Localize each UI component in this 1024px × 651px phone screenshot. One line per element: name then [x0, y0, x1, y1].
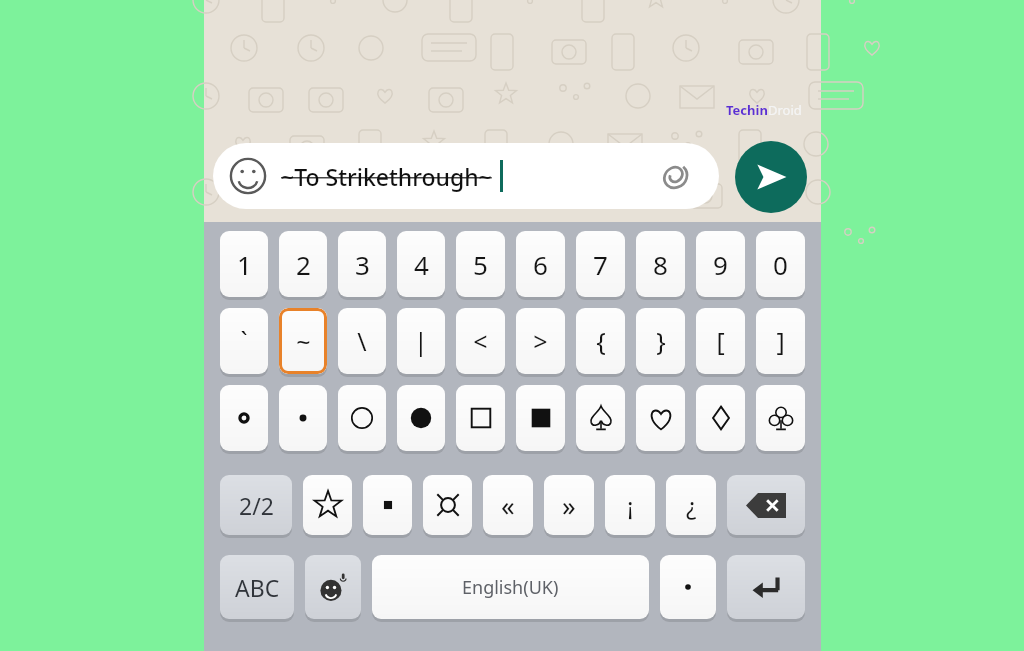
button[interactable]: `	[220, 308, 268, 374]
button[interactable]: Emoji and voice input	[305, 555, 361, 619]
button[interactable]	[303, 475, 352, 535]
staticText: ¿	[686, 489, 697, 522]
staticText: 4	[414, 247, 429, 282]
staticText: «	[501, 487, 515, 524]
button[interactable]	[279, 385, 327, 451]
staticText: ~To Strikethrough~	[281, 161, 492, 192]
staticText: 2	[296, 247, 311, 282]
staticText: >	[533, 324, 548, 358]
staticText: ¡	[627, 489, 634, 522]
button[interactable]: 3	[338, 231, 386, 297]
button[interactable]	[636, 385, 685, 451]
button[interactable]: «	[483, 475, 533, 535]
button[interactable]: 6	[516, 231, 565, 297]
button[interactable]: 2	[279, 231, 327, 297]
staticText: ABC	[235, 572, 280, 603]
other: Backspace	[727, 475, 805, 535]
button[interactable]	[516, 385, 565, 451]
button[interactable]: Emoji	[213, 143, 719, 209]
staticText: |	[414, 324, 428, 358]
button[interactable]: 8	[636, 231, 685, 297]
staticText: {	[596, 324, 606, 358]
staticText: `	[240, 324, 248, 358]
staticText: 9	[713, 247, 728, 282]
button[interactable]: ¡	[605, 475, 655, 535]
staticText: »	[562, 487, 576, 524]
staticText: English(UK)	[462, 575, 559, 600]
button[interactable]: \	[338, 308, 386, 374]
button[interactable]	[423, 475, 472, 535]
button[interactable]: 9	[696, 231, 745, 297]
button[interactable]	[456, 385, 505, 451]
staticText: ~	[296, 324, 311, 358]
button[interactable]: English(UK)	[372, 555, 649, 619]
button[interactable]	[397, 385, 445, 451]
button[interactable]: Emoji	[227, 155, 269, 197]
button[interactable]: >	[516, 308, 565, 374]
staticText: 0	[773, 247, 788, 282]
button[interactable]	[660, 555, 716, 619]
button[interactable]: Attach	[655, 155, 697, 197]
button[interactable]: }	[636, 308, 685, 374]
button[interactable]: Send	[735, 141, 807, 213]
button[interactable]: 4	[397, 231, 445, 297]
button[interactable]: ~	[279, 308, 327, 374]
staticText: \	[357, 324, 367, 358]
button[interactable]: 0	[756, 231, 805, 297]
button[interactable]: 2/2	[220, 475, 292, 535]
button[interactable]	[756, 385, 805, 451]
staticText: 6	[533, 247, 548, 282]
other: Enter	[727, 555, 805, 619]
staticText: <	[473, 324, 488, 358]
staticText: 8	[653, 247, 668, 282]
button[interactable]	[727, 555, 805, 619]
button[interactable]	[576, 385, 625, 451]
button[interactable]	[727, 475, 805, 535]
staticText: 2/2	[239, 490, 274, 521]
staticText: }	[656, 324, 666, 358]
button[interactable]: [	[696, 308, 745, 374]
button[interactable]: ABC	[220, 555, 294, 619]
button[interactable]	[220, 385, 268, 451]
button[interactable]: »	[544, 475, 594, 535]
staticText: 5	[473, 247, 488, 282]
staticText: 1	[237, 247, 252, 282]
button[interactable]: <	[456, 308, 505, 374]
staticText: Droid	[768, 101, 802, 119]
staticText: ]	[776, 324, 785, 358]
staticText: [	[716, 324, 725, 358]
button[interactable]	[338, 385, 386, 451]
button[interactable]	[696, 385, 745, 451]
staticText: 3	[355, 247, 370, 282]
button[interactable]: ¿	[666, 475, 716, 535]
staticText: Techin	[726, 101, 768, 119]
button[interactable]: |	[397, 308, 445, 374]
staticText: 7	[593, 247, 608, 282]
button[interactable]: 7	[576, 231, 625, 297]
button[interactable]: ]	[756, 308, 805, 374]
button[interactable]	[363, 475, 412, 535]
button[interactable]: {	[576, 308, 625, 374]
button[interactable]: 5	[456, 231, 505, 297]
button[interactable]: 1	[220, 231, 268, 297]
